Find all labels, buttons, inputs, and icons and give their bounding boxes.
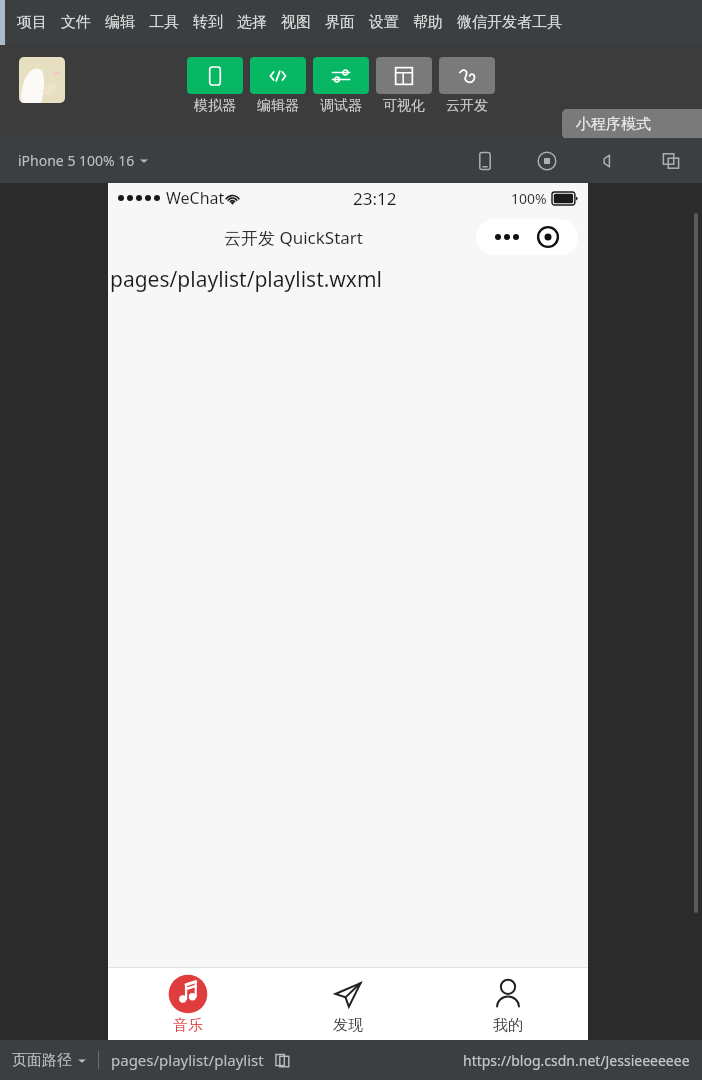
staticText: 选择 [237,13,267,32]
staticText: 23:12 [353,187,397,210]
staticText: pages/playlist/playlist.wxml [110,265,383,294]
button[interactable]: Account avatar [19,57,65,103]
button[interactable]: Copy path [272,1050,292,1070]
button[interactable]: 我的 [428,968,588,1040]
button[interactable]: Detach window [658,148,684,174]
staticText: 编辑器 [257,97,299,115]
staticText: 模拟器 [194,97,236,115]
staticText: iPhone 5 100% 16 [18,151,135,170]
staticText: pages/playlist/playlist [111,1050,264,1070]
button[interactable]: Record screen [534,148,560,174]
staticText: 转到 [193,13,223,32]
button[interactable]: 小程序模式 [562,109,702,139]
button[interactable]: 设置 [362,7,406,38]
staticText: 设置 [369,13,399,32]
button[interactable]: 可视化 [376,57,432,115]
button[interactable]: Rotate device [472,148,498,174]
staticText: 编辑 [105,13,135,32]
staticText: 云开发 QuickStart [224,226,363,249]
button[interactable]: 文件 [54,7,98,38]
button[interactable]: 云开发 [439,57,495,115]
button[interactable]: 发现 [268,968,428,1040]
staticText: https://blog.csdn.net/Jessieeeeeee [463,1051,690,1070]
staticText: 界面 [325,13,355,32]
staticText: 小程序模式 [576,115,651,134]
button[interactable]: Menu and close [476,219,578,255]
staticText: 100% [511,189,547,208]
staticText: 页面路径 [12,1051,72,1070]
button[interactable]: 编辑 [98,7,142,38]
button[interactable]: Mute [596,148,622,174]
staticText: 视图 [281,13,311,32]
staticText: 文件 [61,13,91,32]
button[interactable]: 视图 [274,7,318,38]
button[interactable]: 界面 [318,7,362,38]
button[interactable]: 项目 [10,7,54,38]
staticText: 工具 [149,13,179,32]
button[interactable]: 微信开发者工具 [450,7,569,38]
staticText: 微信开发者工具 [457,13,562,32]
staticText: 音乐 [173,1016,203,1035]
button[interactable]: 模拟器 [187,57,243,115]
staticText: 项目 [17,13,47,32]
button[interactable]: iPhone 5 100% 16 [18,151,148,170]
staticText: 调试器 [320,97,362,115]
button[interactable]: 调试器 [313,57,369,115]
button[interactable]: 音乐 [108,968,268,1040]
staticText: 发现 [333,1016,363,1035]
button[interactable]: 帮助 [406,7,450,38]
staticText: WeChat [166,187,225,209]
staticText: 我的 [493,1016,523,1035]
button[interactable]: 转到 [186,7,230,38]
button[interactable]: 选择 [230,7,274,38]
staticText: 可视化 [383,97,425,115]
staticText: 云开发 [446,97,488,115]
button[interactable]: 工具 [142,7,186,38]
button[interactable]: 页面路径 [12,1051,86,1070]
button[interactable]: 编辑器 [250,57,306,115]
staticText: 帮助 [413,13,443,32]
